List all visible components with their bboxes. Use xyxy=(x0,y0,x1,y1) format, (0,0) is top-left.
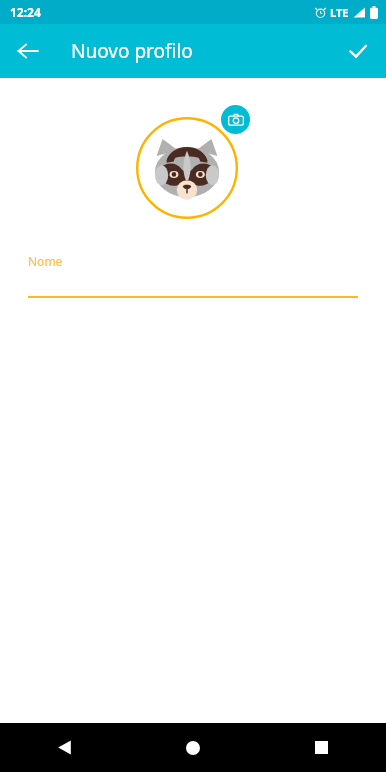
button[interactable]: Home xyxy=(128,723,257,772)
button[interactable]: Recent apps xyxy=(257,723,386,772)
staticText: Nuovo profilo xyxy=(71,38,193,64)
button[interactable]: Back xyxy=(0,723,128,772)
staticText: 12:24 xyxy=(10,4,41,20)
button[interactable]: Change profile photo xyxy=(136,105,250,219)
button[interactable]: Save xyxy=(336,29,380,73)
button[interactable]: Nome xyxy=(28,253,358,298)
staticText: Nome xyxy=(28,253,63,269)
button[interactable]: Back xyxy=(6,29,50,73)
staticText: LTE xyxy=(330,5,349,20)
